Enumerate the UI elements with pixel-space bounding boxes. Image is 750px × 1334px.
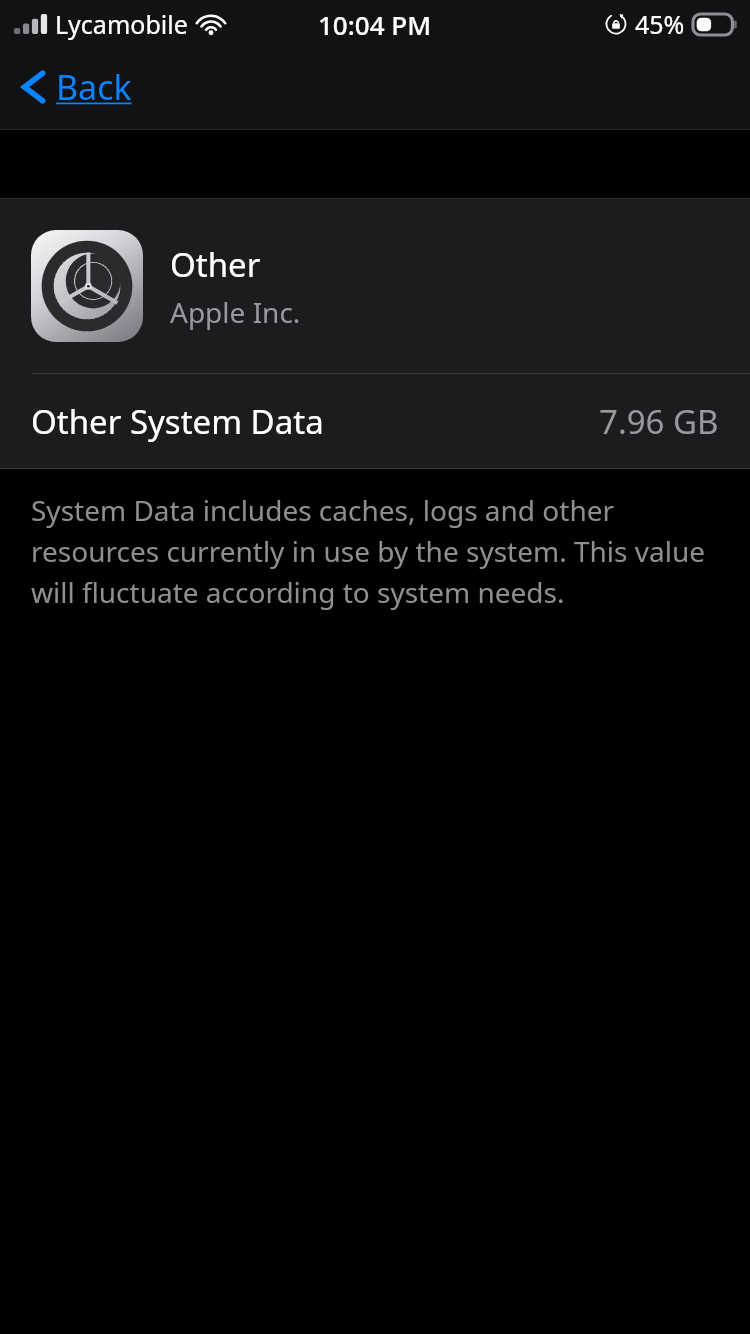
staticText: Other System Data bbox=[31, 399, 324, 444]
staticText: 10:04 PM bbox=[318, 7, 432, 42]
button[interactable]: Other bbox=[0, 199, 750, 373]
staticText: 45% bbox=[635, 7, 685, 41]
button[interactable]: Other System Data bbox=[0, 374, 750, 468]
staticText: Apple Inc. bbox=[170, 293, 301, 331]
staticText: Lycamobile bbox=[55, 7, 188, 41]
button[interactable]: Back bbox=[14, 60, 136, 114]
staticText: Other bbox=[170, 242, 261, 287]
staticText: Back bbox=[56, 64, 132, 110]
staticText: 7.96 GB bbox=[599, 399, 719, 444]
staticText: System Data includes caches, logs and ot… bbox=[31, 491, 719, 611]
